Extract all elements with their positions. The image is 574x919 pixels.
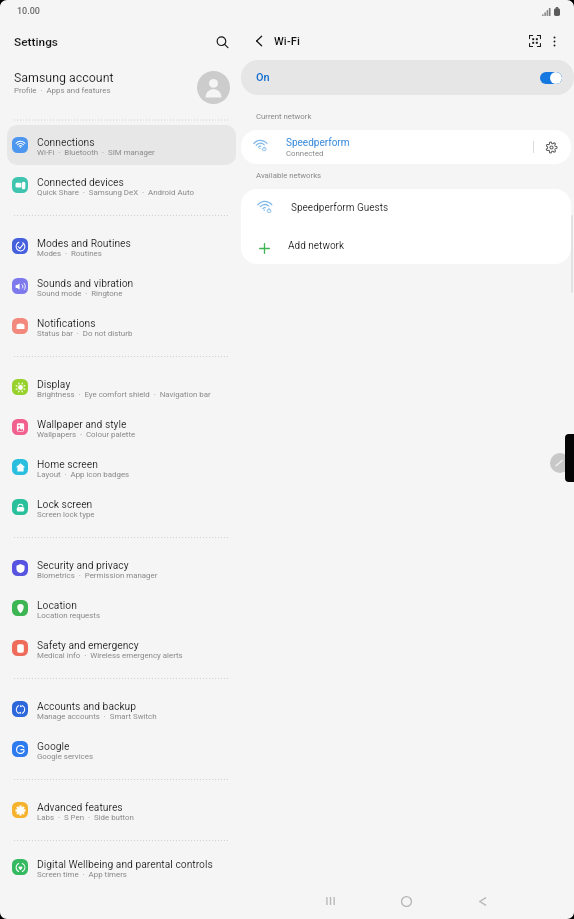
button[interactable]: Home: [389, 884, 423, 918]
staticText: Notifications: [37, 317, 96, 329]
staticText: Biometrics · Permission manager: [37, 571, 158, 580]
staticText: Medical info · Wireless emergency alerts: [37, 651, 183, 660]
staticText: Profile · Apps and features: [14, 86, 111, 95]
button[interactable]: Search: [209, 29, 235, 55]
button[interactable]: Display: [7, 367, 236, 407]
button[interactable]: Notifications: [7, 306, 236, 346]
staticText: Settings: [14, 35, 58, 49]
button[interactable]: Lock screen: [7, 487, 236, 527]
staticText: Home screen: [37, 458, 98, 470]
staticText: Digital Wellbeing and parental controls: [37, 858, 213, 870]
button[interactable]: Speedperform Guests: [241, 189, 571, 227]
button[interactable]: Wallpaper and style: [7, 407, 236, 447]
button[interactable]: Add network: [241, 227, 571, 264]
button[interactable]: Sounds and vibration: [7, 266, 236, 306]
staticText: Samsung account: [14, 70, 114, 85]
button[interactable]: Accounts and backup: [7, 689, 236, 729]
staticText: Google: [37, 740, 70, 752]
staticText: Add network: [288, 240, 345, 252]
button[interactable]: Connected devices: [7, 165, 236, 205]
button[interactable]: Modes and Routines: [7, 226, 236, 266]
staticText: Layout · App icon badges: [37, 470, 130, 479]
staticText: Wallpapers · Colour palette: [37, 430, 136, 439]
staticText: Display: [37, 378, 71, 390]
staticText: Screen lock type: [37, 510, 95, 519]
staticText: Sound mode · Ringtone: [37, 289, 123, 298]
button[interactable]: Security and privacy: [7, 548, 236, 588]
button[interactable]: Connections: [7, 125, 236, 165]
button[interactable]: Location: [7, 588, 236, 628]
staticText: Safety and emergency: [37, 639, 139, 651]
staticText: Screen time · App timers: [37, 870, 127, 879]
button[interactable]: Scan QR code: [524, 30, 546, 52]
staticText: Security and privacy: [37, 559, 129, 571]
staticText: Manage accounts · Smart Switch: [37, 712, 157, 721]
button[interactable]: Home screen: [7, 447, 236, 487]
button[interactable]: Recents: [313, 884, 347, 918]
staticText: Sounds and vibration: [37, 277, 134, 289]
staticText: Location requests: [37, 611, 101, 620]
staticText: Modes and Routines: [37, 237, 131, 249]
staticText: Lock screen: [37, 498, 93, 510]
staticText: Speedperform Guests: [291, 202, 389, 214]
staticText: Location: [37, 599, 77, 611]
button[interactable]: Network settings: [541, 137, 561, 157]
staticText: Advanced features: [37, 801, 123, 813]
button[interactable]: Navigate up: [249, 31, 269, 51]
staticText: On: [256, 71, 270, 84]
button[interactable]: Speedperform: [241, 130, 571, 164]
button[interactable]: Google: [7, 729, 236, 769]
staticText: Quick Share · Samsung DeX · Android Auto: [37, 188, 194, 197]
staticText: Labs · S Pen · Side button: [37, 813, 134, 822]
button[interactable]: Edge panel handle: [550, 453, 570, 473]
button[interactable]: Profile picture: [197, 71, 230, 104]
staticText: Modes · Routines: [37, 249, 102, 258]
button[interactable]: More options: [543, 30, 565, 52]
staticText: Connected: [286, 149, 324, 158]
staticText: Wi-Fi: [274, 35, 300, 48]
staticText: Accounts and backup: [37, 700, 137, 712]
button[interactable]: Back: [465, 884, 499, 918]
staticText: 10.00: [17, 6, 40, 17]
button[interactable]: Advanced features: [7, 790, 236, 830]
staticText: Brightness · Eye comfort shield · Naviga…: [37, 390, 211, 399]
staticText: Google services: [37, 752, 93, 761]
staticText: Connected devices: [37, 176, 124, 188]
staticText: Status bar · Do not disturb: [37, 329, 133, 338]
staticText: Current network: [256, 112, 312, 121]
button[interactable]: Safety and emergency: [7, 628, 236, 668]
staticText: Wallpaper and style: [37, 418, 127, 430]
staticText: Wi-Fi · Bluetooth · SIM manager: [37, 148, 155, 157]
button[interactable]: Samsung account: [0, 62, 241, 115]
staticText: Connections: [37, 136, 95, 148]
staticText: Available networks: [256, 171, 322, 180]
button[interactable]: On: [241, 60, 574, 95]
button[interactable]: Digital Wellbeing and parental controls: [7, 851, 236, 883]
staticText: Speedperform: [286, 137, 350, 149]
